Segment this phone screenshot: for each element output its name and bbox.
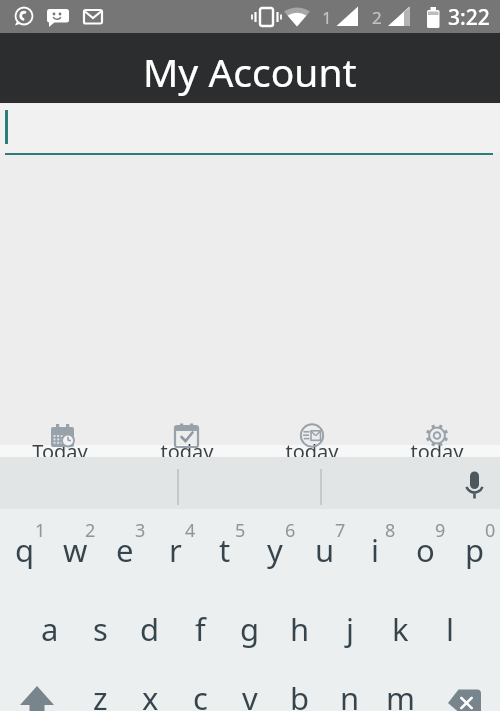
button[interactable] <box>150 420 225 457</box>
button[interactable] <box>425 664 500 711</box>
button[interactable]: x <box>125 661 175 711</box>
staticText: e <box>116 529 134 571</box>
staticText: 1 <box>322 6 332 29</box>
staticText: a <box>41 608 59 650</box>
staticText: 4 <box>185 518 196 538</box>
button[interactable] <box>400 420 475 457</box>
button[interactable]: v <box>225 661 275 711</box>
button[interactable]: r <box>150 514 200 586</box>
staticText: g <box>240 608 260 650</box>
button[interactable]: i <box>350 514 400 586</box>
button[interactable]: w <box>50 514 100 586</box>
button[interactable]: y <box>250 514 300 586</box>
button[interactable]: z <box>75 661 125 711</box>
staticText: 2 <box>85 518 96 538</box>
button[interactable]: h <box>275 592 325 666</box>
staticText: o <box>416 529 435 571</box>
staticText: 1 <box>35 518 46 538</box>
staticText: c <box>193 677 208 711</box>
staticText: today <box>410 438 464 464</box>
staticText: 3:22 <box>448 3 490 32</box>
button[interactable]: p <box>450 514 500 586</box>
staticText: b <box>290 677 310 711</box>
button[interactable]: d <box>125 592 175 666</box>
button[interactable] <box>455 462 495 504</box>
staticText: i <box>371 529 379 571</box>
button[interactable]: b <box>275 661 325 711</box>
button[interactable] <box>0 457 500 509</box>
button[interactable]: o <box>400 514 450 586</box>
staticText: today <box>285 438 339 464</box>
button[interactable]: g <box>225 592 275 666</box>
button[interactable]: c <box>175 661 225 711</box>
staticText: r <box>169 529 182 571</box>
staticText: j <box>346 608 354 650</box>
staticText: 9 <box>435 518 446 538</box>
staticText: t <box>219 529 231 571</box>
staticText: 3 <box>135 518 146 538</box>
button[interactable]: l <box>425 592 475 666</box>
button[interactable]: a <box>25 592 75 666</box>
staticText: y <box>267 529 283 571</box>
button[interactable]: m <box>375 661 425 711</box>
staticText: h <box>290 608 310 650</box>
button[interactable] <box>25 420 100 457</box>
staticText: p <box>465 529 485 571</box>
staticText: l <box>446 608 454 650</box>
button[interactable]: u <box>300 514 350 586</box>
button[interactable] <box>0 104 500 153</box>
staticText: z <box>93 677 108 711</box>
button[interactable]: j <box>325 592 375 666</box>
staticText: 0 <box>485 518 496 538</box>
button[interactable]: k <box>375 592 425 666</box>
staticText: s <box>93 608 108 650</box>
button[interactable]: s <box>75 592 125 666</box>
staticText: today <box>160 438 214 464</box>
button[interactable]: t <box>200 514 250 586</box>
staticText: 6 <box>285 518 296 538</box>
staticText: 2 <box>372 6 382 29</box>
button[interactable]: f <box>175 592 225 666</box>
staticText: u <box>315 529 335 571</box>
staticText: k <box>392 608 409 650</box>
button[interactable] <box>12 664 75 711</box>
staticText: v <box>242 677 258 711</box>
staticText: Today <box>32 438 88 464</box>
staticText: d <box>140 608 160 650</box>
button[interactable]: q <box>0 514 50 586</box>
staticText: n <box>340 677 360 711</box>
button[interactable]: e <box>100 514 150 586</box>
staticText: 5 <box>235 518 246 538</box>
button[interactable] <box>275 420 350 457</box>
staticText: q <box>15 529 35 571</box>
staticText: f <box>195 608 206 650</box>
staticText: w <box>63 529 88 571</box>
staticText: 7 <box>335 518 346 538</box>
button[interactable]: n <box>325 661 375 711</box>
staticText: m <box>386 677 415 711</box>
staticText: x <box>142 677 159 711</box>
staticText: 8 <box>385 518 396 538</box>
staticText: My Account <box>143 45 357 98</box>
